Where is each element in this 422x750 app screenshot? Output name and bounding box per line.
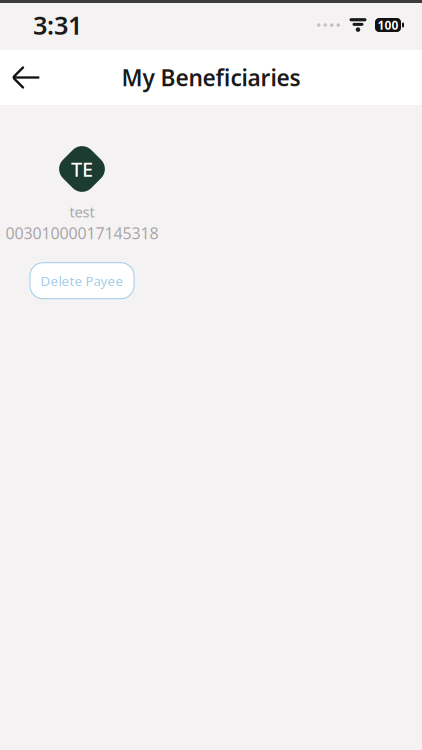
staticText: Delete Payee <box>40 272 123 290</box>
staticText: 100 <box>377 17 398 33</box>
staticText: My Beneficiaries <box>121 62 300 92</box>
button[interactable]: Back <box>0 50 52 104</box>
button[interactable]: Delete Payee <box>30 263 134 299</box>
staticText: test <box>69 202 94 221</box>
staticText: 3:31 <box>33 8 82 42</box>
staticText: 00301000017145318 <box>5 222 158 244</box>
staticText: TE <box>71 156 93 182</box>
